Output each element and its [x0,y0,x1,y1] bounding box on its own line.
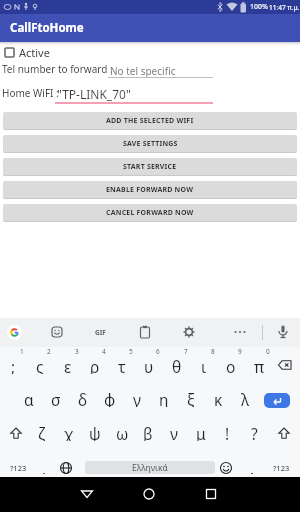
button[interactable]: START SERVICE [3,158,297,175]
button[interactable]: Active [4,45,50,60]
button[interactable] [179,322,199,342]
staticText: . [250,458,255,474]
staticText: GIF [95,328,106,337]
button[interactable]: η [154,389,174,407]
button[interactable]: α [19,389,39,407]
staticText: Active [19,45,50,60]
staticText: ψ [89,423,101,441]
button[interactable] [138,483,160,505]
staticText: 11:47 π.μ. [269,3,300,12]
button[interactable] [230,322,250,342]
staticText: ?123 [10,463,27,473]
button[interactable] [76,483,98,505]
button[interactable] [200,483,222,505]
button[interactable]: , [38,458,50,474]
staticText: π [254,356,265,374]
button[interactable] [274,423,294,443]
button[interactable]: δ [73,389,93,407]
staticText: 100% [250,2,268,12]
button[interactable]: λ [235,389,255,407]
staticText: Tel number to forward : [2,62,113,76]
button[interactable]: SAVE SETTINGS [3,135,297,152]
button[interactable]: ?123 [269,460,293,476]
button[interactable]: ζ [32,423,52,441]
staticText: η [159,389,169,407]
button[interactable]: θ [167,356,187,374]
button[interactable]: ω [112,423,132,441]
button[interactable]: ξ [181,389,201,407]
staticText: μ [196,423,206,441]
button[interactable]: ε [58,356,78,374]
staticText: λ [241,389,250,407]
button[interactable] [135,322,155,342]
staticText: ω [116,423,129,441]
button[interactable]: ADD THE SELECTED WIFI [3,112,297,129]
staticText: No tel specific [110,64,176,78]
button[interactable]: φ [100,389,120,407]
staticText: 9 [238,347,242,356]
button[interactable]: π [249,356,269,374]
button[interactable] [7,325,22,340]
button[interactable]: Ελληνικά [85,461,215,474]
button[interactable]: . [246,458,258,474]
button[interactable]: σ [46,389,66,407]
button[interactable]: ι [194,356,214,374]
staticText: 8 [211,347,215,356]
button[interactable] [216,458,236,478]
button[interactable]: "TP-LINK_70" [55,87,213,104]
staticText: ξ [187,389,195,407]
button[interactable]: κ [208,389,228,407]
staticText: ι [201,356,207,374]
button[interactable]: ς [30,356,50,374]
button[interactable] [273,322,293,342]
staticText: σ [51,389,61,407]
staticText: ! [225,423,230,441]
staticText: υ [144,356,154,374]
staticText: κ [214,389,223,407]
button[interactable]: ψ [85,423,105,441]
button[interactable]: β [138,423,158,441]
staticText: ρ [90,356,100,374]
staticText: CANCEL FORWARD NOW [106,208,194,218]
button[interactable]: χ [59,423,79,441]
button[interactable]: τ [112,356,132,374]
staticText: Ελληνικά [132,462,168,474]
staticText: SAVE SETTINGS [123,139,178,149]
button[interactable] [47,322,67,342]
button[interactable]: ENABLE FORWARD NOW [3,181,297,198]
button[interactable] [6,423,26,443]
staticText: 7 [184,347,188,356]
button[interactable]: μ [191,423,211,441]
button[interactable]: ? [244,423,264,441]
staticText: φ [104,389,116,407]
staticText: 0 [266,347,270,356]
button[interactable]: CANCEL FORWARD NOW [3,204,297,221]
staticText: ? [251,423,258,441]
staticText: "TP-LINK_70" [57,86,131,102]
button[interactable]: υ [139,356,159,374]
staticText: ς [36,356,44,374]
staticText: ENABLE FORWARD NOW [106,185,194,195]
button[interactable] [275,355,295,375]
button[interactable] [264,393,290,408]
button[interactable] [56,458,76,478]
staticText: ζ [38,423,46,441]
button[interactable]: GIF [89,325,111,340]
button[interactable]: ν [164,423,184,441]
button[interactable]: ?123 [6,460,30,476]
button[interactable]: γ [127,389,147,407]
staticText: ; [11,356,16,374]
button[interactable]: ! [217,423,237,441]
staticText: ADD THE SELECTED WIFI [106,116,194,126]
button[interactable]: ο [221,356,241,374]
staticText: ο [226,356,236,374]
button[interactable]: ; [3,356,23,374]
staticText: δ [78,389,88,407]
staticText: 5 [129,347,133,356]
staticText: START SERVICE [123,162,177,172]
button[interactable]: ρ [85,356,105,374]
button[interactable]: No tel specific [108,63,213,78]
staticText: ?123 [273,463,290,473]
staticText: , [42,458,47,474]
staticText: 6 [156,347,160,356]
